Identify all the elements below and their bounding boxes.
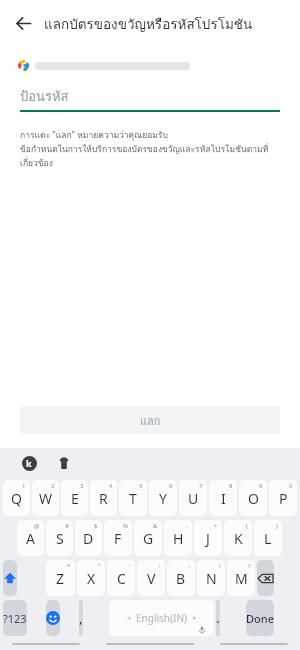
staticText: G [143,529,154,548]
staticText: 6 [169,482,173,490]
button[interactable]: X [77,560,105,596]
staticText: 7 [199,482,203,490]
button[interactable]: S [46,520,73,556]
button[interactable]: ?123 [3,600,27,636]
staticText: @ [34,522,40,530]
staticText: Done [246,611,274,626]
button[interactable]: U [179,480,207,516]
button[interactable]: G [134,520,162,556]
staticText: 9 [259,482,263,490]
button[interactable]: K [224,520,252,556]
button[interactable]: แลก [20,406,280,434]
staticText: 1 [22,482,26,490]
button[interactable]: W [32,480,59,516]
staticText: Z [56,569,65,588]
button[interactable]: F [104,520,132,556]
staticText: B [176,569,186,588]
button[interactable]: V [137,560,165,596]
staticText: E [71,489,79,508]
staticText: : [159,562,161,570]
button[interactable]: L [254,520,282,556]
staticText: N [206,569,217,588]
button[interactable]: P [269,480,297,516]
button[interactable]: B [167,560,195,596]
staticText: + [214,522,218,530]
button[interactable]: Q [3,480,30,516]
staticText: L [264,529,272,548]
button[interactable]: A [17,520,44,556]
staticText: O [248,489,259,508]
staticText: V [147,569,156,588]
staticText: D [83,529,94,548]
staticText: A [26,529,35,548]
staticText: % [123,522,128,530]
staticText: U [188,489,199,508]
button[interactable]: Clipboard [53,452,75,474]
staticText: S [56,529,64,548]
staticText: H [173,529,184,548]
staticText: M [235,569,248,588]
button[interactable]: J [194,520,222,556]
button[interactable]: Z [46,560,75,596]
button[interactable]: C [107,560,135,596]
staticText: P [279,489,288,508]
button[interactable]: D [75,520,102,556]
staticText: 4 [109,482,113,490]
staticText: ' [129,562,131,570]
staticText: T [129,489,137,508]
staticText: English(IN) [136,611,188,625]
staticText: . [216,609,220,627]
staticText: k [26,457,32,469]
button[interactable]: T [119,480,147,516]
button[interactable]: . [216,600,220,636]
staticText: การแตะ "แลก" หมายความว่าคุณยอมรับ [20,128,168,142]
staticText: - [186,522,188,530]
staticText: I [221,489,226,508]
button[interactable]: M [227,560,255,596]
staticText: ) [276,522,278,530]
button[interactable]: Emoji [46,600,60,636]
staticText: 8 [229,482,233,490]
staticText: " [98,562,101,570]
staticText: Y [159,489,167,508]
button[interactable]: Shift [3,560,17,596]
staticText: Q [11,489,22,508]
staticText: J [206,529,210,548]
button[interactable]: E [61,480,88,516]
staticText: 0 [289,482,293,490]
button[interactable]: , [79,600,83,636]
staticText: ข้อกำหนดในการให้บริการของบัตรของขวัญและร… [20,142,282,170]
staticText: 2 [51,482,55,490]
staticText: ▸ [193,614,197,622]
staticText: ! [219,562,221,570]
button[interactable]: H [164,520,192,556]
button[interactable]: ◂ [109,600,214,636]
button[interactable]: Back [6,6,40,40]
button[interactable]: Y [149,480,177,516]
staticText: X [87,569,96,588]
staticText: * [67,562,71,570]
staticText: $ [94,522,98,530]
staticText: ◂ [127,614,131,622]
staticText: & [153,522,158,530]
button[interactable]: ป้อนรหัส [20,85,280,107]
staticText: ?123 [3,611,27,626]
staticText: # [65,522,69,530]
staticText: K [234,529,243,548]
button[interactable]: Backspace [257,560,274,596]
button[interactable]: R [90,480,117,516]
staticText: C [117,569,126,588]
staticText: ป้อนรหัส [20,86,69,107]
staticText: R [99,489,108,508]
button[interactable]: Done [246,600,274,636]
button[interactable]: O [239,480,267,516]
staticText: 3 [80,482,84,490]
staticText: , [79,609,83,627]
staticText: F [114,529,122,548]
staticText: ; [189,562,191,570]
staticText: แลกบัตรของขวัญหรือรหัสโปรโมชัน [44,13,253,34]
staticText: W [39,489,53,508]
button[interactable]: I [209,480,237,516]
button[interactable]: N [197,560,225,596]
button[interactable]: Keyboard settings [18,452,40,474]
